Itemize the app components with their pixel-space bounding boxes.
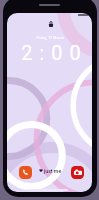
staticText: 2:00 [21,41,88,64]
staticText: just me [44,168,62,174]
button[interactable]: Camera [71,166,84,179]
button[interactable]: Phone [19,166,32,179]
staticText: Friday, 17 March [36,35,64,39]
